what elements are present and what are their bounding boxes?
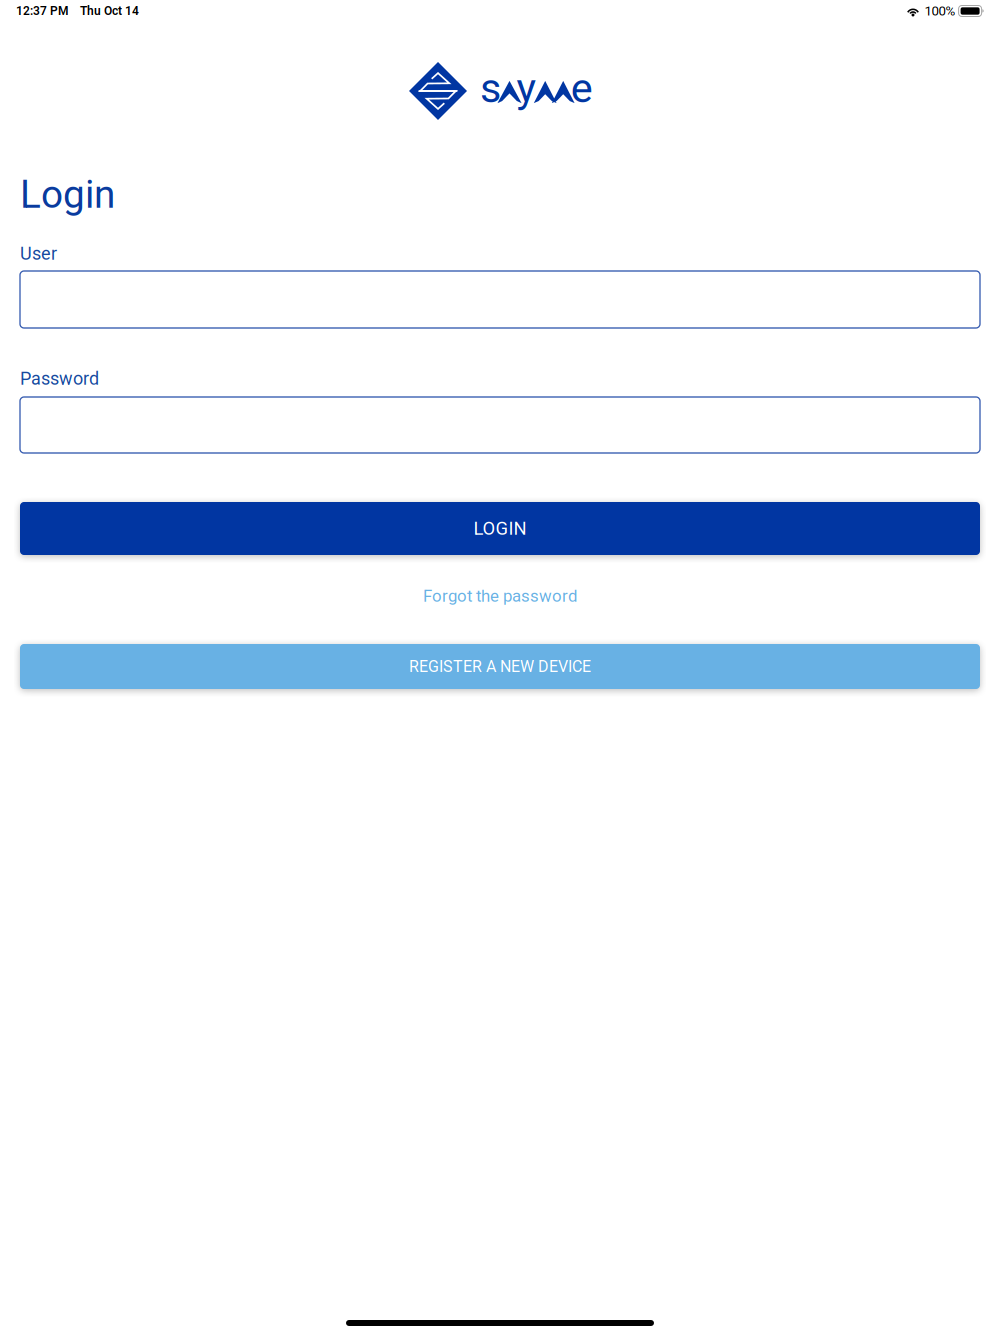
staticText: s	[480, 64, 501, 112]
button[interactable]: REGISTER A NEW DEVICE	[20, 644, 980, 689]
staticText: Password	[20, 368, 99, 389]
staticText: REGISTER A NEW DEVICE	[409, 657, 591, 676]
button[interactable]: Forgot the password	[20, 579, 980, 613]
staticText: User	[20, 243, 57, 264]
staticText: e	[571, 64, 593, 112]
staticText: Thu Oct 14	[80, 4, 139, 18]
staticText: 100%	[925, 3, 956, 19]
staticText: Forgot the password	[423, 586, 577, 606]
staticText: LOGIN	[473, 518, 526, 539]
staticText: Login	[20, 172, 115, 217]
staticText: 12:37 PM	[16, 4, 69, 18]
button[interactable]: LOGIN	[20, 502, 980, 555]
staticText: y	[516, 64, 536, 112]
